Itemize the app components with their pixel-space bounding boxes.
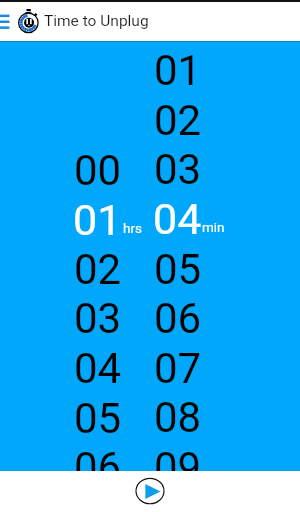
staticText: 06: [74, 443, 122, 471]
button[interactable]: 06: [154, 294, 202, 343]
staticText: 06: [154, 294, 202, 343]
button[interactable]: 05: [154, 245, 202, 294]
button[interactable]: Menu: [0, 6, 14, 35]
button[interactable]: 02: [154, 96, 202, 145]
button[interactable]: 07: [154, 344, 202, 393]
staticText: 05: [154, 245, 202, 294]
button[interactable]: 06: [74, 443, 122, 471]
button[interactable]: 01: [73, 195, 122, 245]
button[interactable]: hrs: [123, 220, 142, 236]
button[interactable]: 02: [74, 245, 122, 294]
button[interactable]: 00: [74, 146, 122, 195]
staticText: 01: [154, 46, 202, 95]
button[interactable]: 08: [154, 393, 202, 442]
staticText: 03: [154, 145, 202, 194]
staticText: 05: [74, 394, 122, 443]
staticText: 00: [74, 146, 122, 195]
button[interactable]: Time to Unplug: [44, 12, 149, 30]
button[interactable]: 05: [74, 394, 122, 443]
button[interactable]: min: [202, 219, 225, 235]
staticText: 04: [153, 194, 202, 244]
staticText: 01: [73, 195, 122, 245]
button[interactable]: 03: [154, 145, 202, 194]
button[interactable]: 03: [74, 294, 122, 343]
staticText: 02: [154, 96, 202, 145]
button[interactable]: 01: [154, 46, 202, 95]
staticText: 09: [154, 443, 202, 471]
button[interactable]: 09: [154, 443, 202, 471]
staticText: 04: [74, 344, 122, 393]
staticText: 08: [154, 393, 202, 442]
button[interactable]: Start timer: [133, 474, 167, 508]
button[interactable]: 04: [153, 194, 202, 244]
button[interactable]: 04: [74, 344, 122, 393]
button[interactable]: Timer: [17, 5, 41, 35]
staticText: 07: [154, 344, 202, 393]
staticText: 03: [74, 294, 122, 343]
staticText: 02: [74, 245, 122, 294]
